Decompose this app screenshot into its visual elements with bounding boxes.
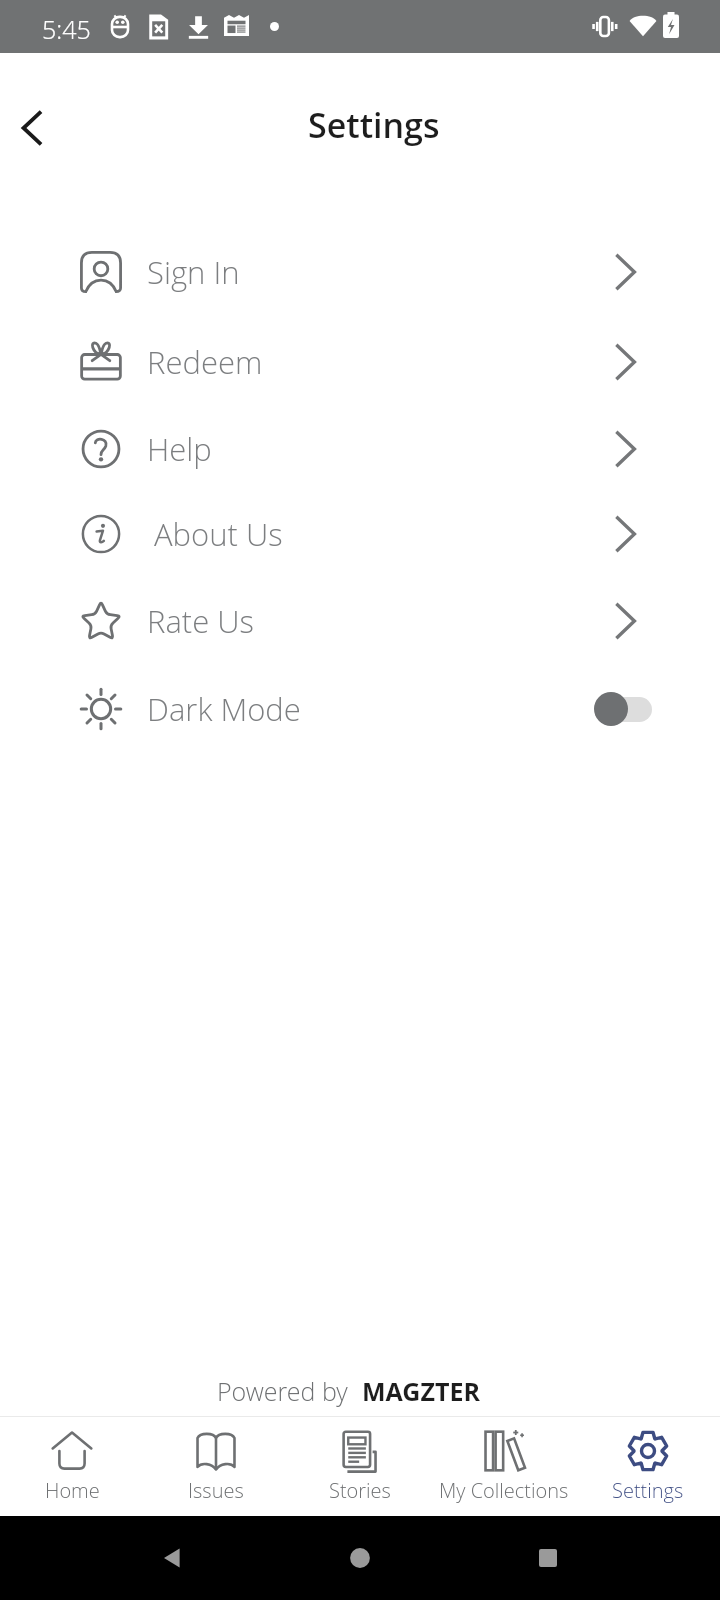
staticText: Rate Us: [147, 600, 255, 642]
button[interactable]: Back: [6, 103, 56, 153]
staticText: Issues: [188, 1477, 244, 1504]
button[interactable]: Help: [0, 406, 720, 491]
staticText: Settings: [612, 1477, 684, 1504]
button[interactable]: Rate Us: [0, 576, 720, 665]
button[interactable]: Dark Mode toggle: [600, 691, 652, 727]
staticText: Redeem: [147, 341, 263, 383]
staticText: About Us: [154, 513, 283, 555]
button[interactable]: Sign In: [0, 227, 720, 317]
button[interactable]: Stories: [288, 1417, 432, 1516]
staticText: Sign In: [147, 251, 240, 293]
staticText: Home: [45, 1477, 100, 1504]
button[interactable]: About Us: [0, 491, 720, 576]
staticText: Powered by: [217, 1374, 348, 1408]
staticText: Stories: [329, 1477, 391, 1504]
staticText: MAGZTER: [362, 1374, 480, 1408]
staticText: My Collections: [439, 1477, 569, 1504]
button[interactable]: Settings: [576, 1417, 720, 1516]
staticText: 5:45: [42, 12, 91, 46]
staticText: Help: [147, 428, 212, 470]
staticText: Settings: [308, 102, 440, 148]
button[interactable]: Issues: [144, 1417, 288, 1516]
button[interactable]: Dark Mode: [0, 665, 720, 753]
button[interactable]: Redeem: [0, 317, 720, 406]
button[interactable]: Home: [0, 1417, 144, 1516]
button[interactable]: My Collections: [432, 1417, 576, 1516]
staticText: Dark Mode: [147, 688, 301, 730]
